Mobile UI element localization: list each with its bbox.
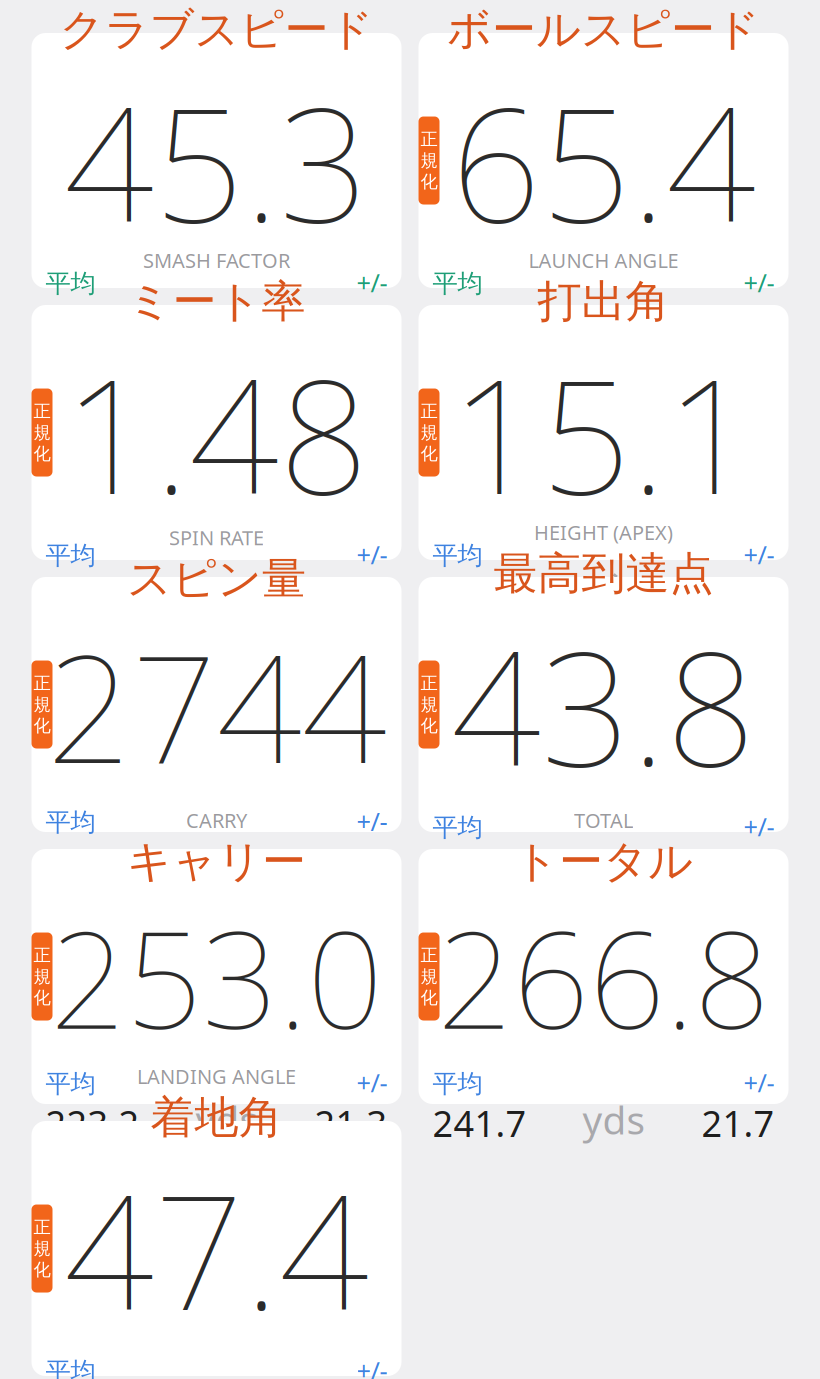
staticText: 平均 bbox=[45, 268, 95, 299]
staticText: 1.48 bbox=[64, 329, 369, 537]
staticText: 46.5 bbox=[45, 299, 118, 347]
staticText: 65.4 bbox=[451, 57, 756, 265]
staticText: CARRY bbox=[186, 807, 247, 833]
staticText: 正 bbox=[33, 1217, 50, 1238]
staticText: 13.2 bbox=[432, 571, 505, 619]
staticText: 253.0 bbox=[50, 888, 383, 1066]
staticText: +/- bbox=[743, 809, 774, 843]
button[interactable]: SMASH FACTOR bbox=[31, 305, 401, 560]
staticText: SPIN RATE bbox=[169, 524, 264, 551]
staticText: 規 bbox=[33, 966, 50, 987]
staticText: 0.03 bbox=[314, 571, 387, 619]
staticText: 化 bbox=[33, 443, 50, 464]
staticText: 化 bbox=[33, 1259, 50, 1280]
staticText: 1.8 bbox=[722, 571, 774, 619]
staticText: 規 bbox=[420, 150, 437, 171]
staticText: SMASH FACTOR bbox=[143, 247, 290, 274]
staticText: 266.8 bbox=[437, 888, 770, 1066]
staticText: 平均 bbox=[45, 807, 95, 838]
staticText: 化 bbox=[33, 987, 50, 1008]
staticText: LAUNCH ANGLE bbox=[528, 247, 678, 274]
staticText: 15.1 bbox=[451, 329, 756, 537]
staticText: +/- bbox=[356, 1353, 387, 1379]
staticText: 平均 bbox=[45, 1068, 95, 1099]
staticText: 241.7 bbox=[432, 1099, 526, 1147]
staticText: 化 bbox=[420, 987, 437, 1008]
staticText: 0.7 bbox=[335, 299, 387, 347]
staticText: 正 bbox=[33, 945, 50, 966]
staticText: rpm bbox=[189, 832, 265, 884]
staticText: 45.3 bbox=[64, 57, 369, 265]
staticText: +/- bbox=[356, 537, 387, 571]
staticText: +/- bbox=[356, 1066, 387, 1099]
staticText: LANDING ANGLE bbox=[137, 1063, 296, 1090]
staticText: +/- bbox=[356, 265, 387, 299]
staticText: 平均 bbox=[432, 812, 482, 843]
staticText: +/- bbox=[743, 265, 774, 299]
staticText: 規 bbox=[420, 966, 437, 987]
staticText: 正 bbox=[33, 673, 50, 694]
staticText: 21.3 bbox=[314, 1099, 387, 1147]
staticText: 2744 bbox=[46, 606, 386, 804]
staticText: スピン量 bbox=[127, 552, 306, 606]
staticText: ボールスピード bbox=[447, 3, 760, 57]
staticText: 5.9 bbox=[722, 843, 774, 891]
staticText: 223.2 bbox=[45, 1099, 139, 1147]
staticText: m/s bbox=[579, 294, 648, 345]
staticText: 平均 bbox=[45, 540, 95, 571]
staticText: トータル bbox=[514, 834, 693, 888]
button[interactable]: HEIGHT (APEX) bbox=[418, 577, 788, 832]
staticText: 規 bbox=[420, 422, 437, 443]
staticText: 67.6 bbox=[432, 299, 505, 347]
staticText: 正 bbox=[420, 945, 437, 966]
staticText: +/- bbox=[356, 804, 387, 838]
staticText: 43.8 bbox=[451, 601, 756, 809]
staticText: 着地角 bbox=[150, 1091, 282, 1145]
staticText: yds bbox=[582, 1094, 645, 1145]
button[interactable]: CARRY bbox=[31, 849, 401, 1104]
staticText: 最高到達点 bbox=[493, 547, 713, 601]
staticText: 規 bbox=[33, 422, 50, 443]
staticText: 正 bbox=[420, 673, 437, 694]
staticText: 化 bbox=[420, 443, 437, 464]
staticText: 化 bbox=[33, 715, 50, 736]
staticText: 平均 bbox=[432, 540, 482, 571]
staticText: 平均 bbox=[432, 268, 482, 299]
staticText: yds bbox=[195, 1094, 258, 1145]
staticText: 化 bbox=[420, 715, 437, 736]
button[interactable]: SPIN RATE bbox=[31, 577, 401, 832]
button[interactable]: CLUB SPEED bbox=[31, 33, 401, 288]
button[interactable]: LAUNCH ANGLE bbox=[418, 305, 788, 560]
staticText: +/- bbox=[743, 537, 774, 571]
staticText: 21.7 bbox=[701, 1099, 774, 1147]
staticText: 打出角 bbox=[537, 275, 669, 329]
staticText: 正 bbox=[33, 401, 50, 422]
staticText: ミート率 bbox=[127, 275, 305, 329]
staticText: 498 bbox=[324, 838, 387, 886]
staticText: 化 bbox=[420, 171, 437, 192]
button[interactable]: TOTAL bbox=[418, 849, 788, 1104]
staticText: 正 bbox=[420, 129, 437, 150]
staticText: キャリー bbox=[127, 834, 306, 888]
staticText: 2739 bbox=[45, 838, 129, 886]
staticText: m/s bbox=[192, 294, 261, 345]
staticText: 規 bbox=[33, 1238, 50, 1259]
staticText: HEIGHT (APEX) bbox=[534, 519, 673, 546]
staticText: TOTAL bbox=[574, 807, 633, 833]
staticText: 規 bbox=[420, 694, 437, 715]
button[interactable]: LANDING ANGLE bbox=[31, 1121, 401, 1376]
staticText: 30.3 bbox=[432, 843, 505, 891]
staticText: 平均 bbox=[432, 1068, 482, 1099]
staticText: クラブスピード bbox=[59, 3, 373, 57]
button[interactable]: BALL SPEED bbox=[418, 33, 788, 288]
staticText: 1.4 bbox=[722, 299, 774, 347]
staticText: 47.4 bbox=[64, 1145, 369, 1353]
staticText: +/- bbox=[743, 1066, 774, 1099]
staticText: 正 bbox=[420, 401, 437, 422]
staticText: 1.47 bbox=[45, 571, 118, 619]
staticText: 規 bbox=[33, 694, 50, 715]
staticText: yds bbox=[582, 838, 645, 889]
staticText: 度 bbox=[594, 569, 633, 617]
